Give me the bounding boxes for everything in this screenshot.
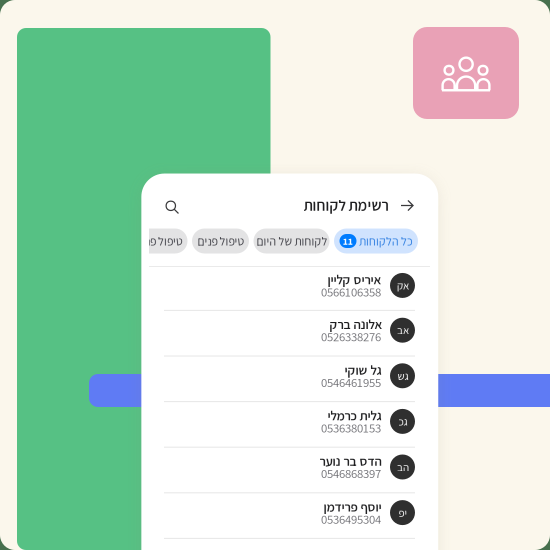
staticText: יוסף פרידמן <box>323 498 381 515</box>
button[interactable]: אלונה ברק <box>149 311 430 355</box>
staticText: טיפול פנים <box>197 233 244 249</box>
staticText: אלונה ברק <box>329 315 381 333</box>
button[interactable]: יוסף פרידמן <box>149 493 430 538</box>
button[interactable]: טיפול פנים <box>192 228 249 253</box>
staticText: גל שוקי <box>344 361 381 378</box>
staticText: הב <box>396 460 408 474</box>
button[interactable]: איריס קליין <box>149 267 430 310</box>
staticText: גכ <box>398 414 407 429</box>
staticText: כל הלקוחות <box>358 233 412 249</box>
button[interactable]: Search <box>158 193 187 222</box>
staticText: הדס בר נוער <box>319 452 381 470</box>
staticText: לקוחות של היום <box>256 233 327 249</box>
button[interactable]: לקוחות של היום <box>253 228 329 253</box>
staticText: אק <box>396 278 408 293</box>
staticText: גלית כרמלי <box>327 407 381 424</box>
button[interactable]: טיפול פנים <box>130 228 187 253</box>
staticText: 0546461955 <box>321 374 381 391</box>
button[interactable]: גל שוקי <box>149 356 430 401</box>
staticText: 0526338276 <box>321 328 381 345</box>
staticText: איריס קליין <box>327 271 381 288</box>
staticText: 0546868397 <box>321 465 381 482</box>
staticText: גש <box>397 368 408 383</box>
staticText: 0566106358 <box>321 284 381 300</box>
staticText: רשימת לקוחות <box>303 195 388 215</box>
staticText: 0536495304 <box>321 511 381 527</box>
button[interactable]: הדס בר נוער <box>149 448 430 492</box>
staticText: טיפול פנים <box>135 233 182 249</box>
button[interactable]: גלית כרמלי <box>149 402 430 447</box>
staticText: אב <box>396 323 408 338</box>
staticText: 0536380153 <box>321 420 381 436</box>
button[interactable]: Back <box>393 192 421 219</box>
staticText: יפ <box>398 505 407 520</box>
staticText: 11 <box>343 234 353 248</box>
button[interactable]: 11 <box>334 228 418 253</box>
button[interactable]: רשימת לקוחות <box>299 195 392 215</box>
